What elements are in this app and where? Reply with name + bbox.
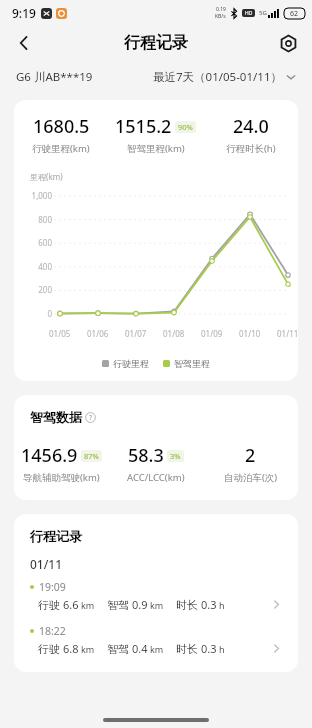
staticText: 01/07 (125, 328, 147, 339)
staticText: 01/11 (30, 556, 63, 572)
staticText: 时长 (176, 598, 198, 612)
staticText: 5G (259, 9, 267, 17)
staticText: km (81, 599, 95, 611)
staticText: ACC/LCC(km) (127, 471, 185, 484)
staticText: 智驾 (107, 642, 129, 656)
button[interactable]: 最近7天（01/05-01/11） (153, 69, 296, 85)
staticText: 62 (290, 9, 299, 19)
button[interactable]: G6 川AB***19 (16, 69, 93, 85)
staticText: 87% (84, 451, 99, 461)
staticText: 6.6 (63, 597, 79, 612)
staticText: 0.3 (201, 641, 217, 656)
staticText: 行程记录 (124, 33, 188, 53)
staticText: 18:22 (39, 624, 66, 638)
staticText: h (219, 643, 225, 655)
staticText: 3% (170, 451, 181, 461)
staticText: 01/09 (201, 328, 223, 339)
staticText: 400 (38, 261, 52, 272)
staticText: 智驾里程(km) (127, 142, 185, 155)
button[interactable]: 18:22 (14, 622, 298, 658)
staticText: 24.0 (233, 114, 269, 139)
staticText: 智驾里程 (174, 358, 210, 369)
staticText: 0.19 (216, 6, 226, 13)
staticText: 1515.2 (115, 114, 172, 139)
staticText: 2 (245, 443, 256, 468)
staticText: 600 (38, 237, 52, 248)
button[interactable]: Settings (272, 27, 304, 59)
button[interactable]: 19:09 (14, 578, 298, 614)
staticText: km (81, 643, 95, 655)
staticText: km (150, 599, 164, 611)
button[interactable]: Back (8, 27, 40, 59)
staticText: km (150, 643, 164, 655)
staticText: 1456.9 (21, 443, 78, 468)
staticText: 行驶里程 (113, 358, 149, 369)
staticText: 时长 (176, 642, 198, 656)
staticText: G6 川AB***19 (16, 69, 93, 85)
staticText: 01/11 (277, 328, 298, 339)
staticText: 1,000 (31, 190, 52, 201)
staticText: 200 (38, 284, 52, 295)
staticText: 01/05 (49, 328, 71, 339)
staticText: 智驾 (107, 598, 129, 612)
staticText: 行驶里程(km) (32, 142, 90, 155)
staticText: 800 (38, 214, 52, 225)
staticText: 行驶 (38, 598, 60, 612)
staticText: h (219, 599, 225, 611)
staticText: HD (245, 10, 253, 17)
staticText: 01/06 (87, 328, 109, 339)
staticText: 6.8 (63, 641, 79, 656)
staticText: 里程(km) (30, 171, 63, 182)
staticText: 58.3 (128, 443, 164, 468)
staticText: 行程记录 (30, 528, 82, 544)
staticText: 0.4 (132, 641, 148, 656)
staticText: 0 (47, 308, 52, 319)
staticText: ? (89, 413, 93, 423)
staticText: 智驾数据 (30, 409, 82, 425)
staticText: 行驶 (38, 642, 60, 656)
staticText: 90% (178, 122, 193, 132)
staticText: 自动泊车(次) (224, 471, 278, 484)
staticText: 01/10 (239, 328, 261, 339)
staticText: KB/s (215, 13, 226, 20)
staticText: 9:19 (12, 5, 36, 21)
staticText: 最近7天（01/05-01/11） (153, 69, 282, 85)
staticText: 19:09 (39, 580, 66, 594)
staticText: 0.3 (201, 597, 217, 612)
button[interactable]: Info (85, 412, 96, 423)
staticText: 01/08 (163, 328, 185, 339)
staticText: 行程时长(h) (226, 142, 276, 155)
staticText: 0.9 (132, 597, 148, 612)
staticText: 导航辅助驾驶(km) (23, 471, 100, 484)
staticText: 1680.5 (33, 114, 90, 139)
